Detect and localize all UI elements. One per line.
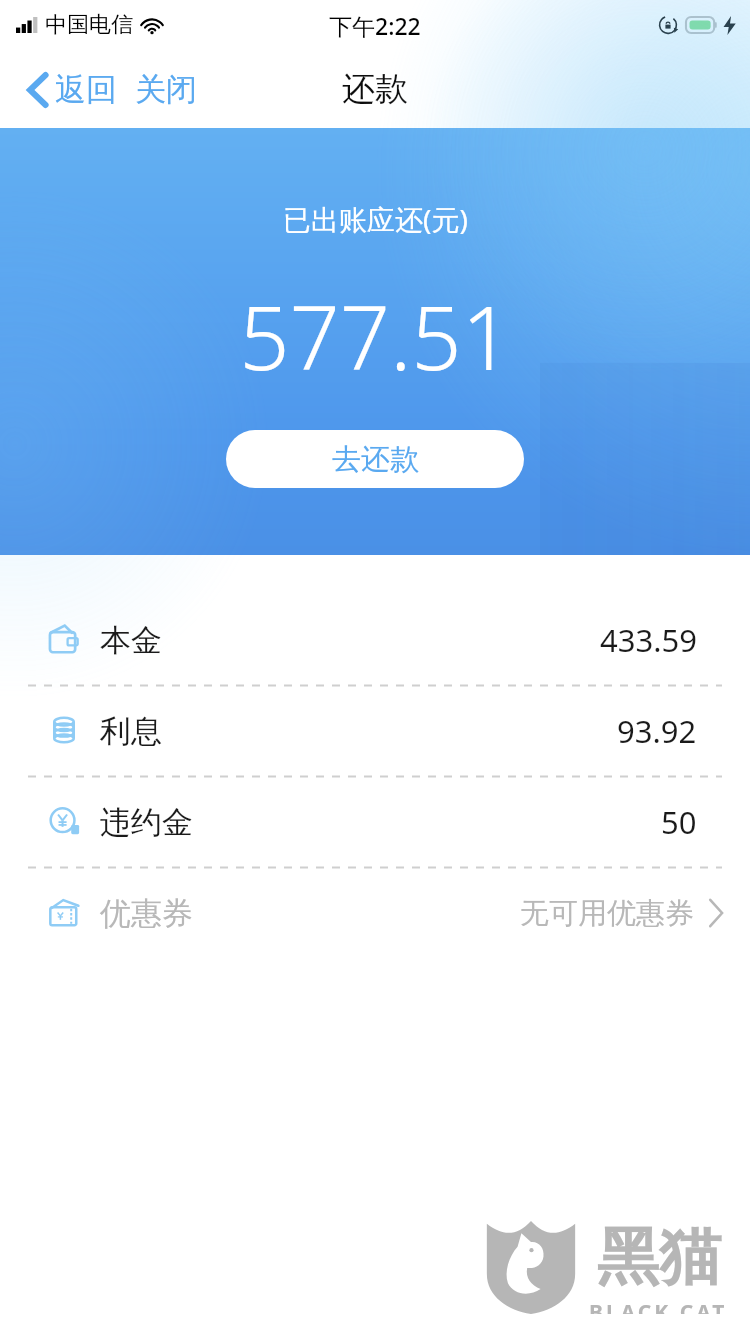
staticText: 433.59 bbox=[600, 619, 697, 661]
staticText: 50 bbox=[661, 801, 697, 843]
staticText: 无可用优惠券 bbox=[520, 895, 694, 932]
button[interactable]: 去还款 bbox=[226, 430, 524, 488]
staticText: 下午2:22 bbox=[329, 10, 421, 41]
staticText: 577.51 bbox=[239, 276, 512, 396]
button[interactable]: 关闭 bbox=[129, 64, 203, 115]
staticText: BLACK CAT bbox=[589, 1298, 728, 1314]
staticText: 本金 bbox=[100, 621, 162, 660]
staticText: 返回 bbox=[55, 70, 117, 109]
staticText: 优惠券 bbox=[100, 894, 193, 933]
staticText: 去还款 bbox=[332, 441, 419, 478]
staticText: 93.92 bbox=[617, 710, 697, 752]
button[interactable]: 返回 bbox=[22, 64, 123, 115]
staticText: 利息 bbox=[100, 712, 162, 751]
staticText: 已出账应还(元) bbox=[283, 200, 468, 238]
button[interactable]: 利息 bbox=[0, 686, 750, 776]
staticText: 还款 bbox=[342, 68, 408, 110]
staticText: 关闭 bbox=[135, 70, 197, 109]
staticText: 黑猫 bbox=[597, 1218, 721, 1296]
staticText: 中国电信 bbox=[45, 11, 133, 39]
button[interactable]: 违约金 bbox=[0, 777, 750, 867]
staticText: 违约金 bbox=[100, 803, 193, 842]
button[interactable]: 优惠券 bbox=[0, 868, 750, 958]
button[interactable]: 本金 bbox=[0, 595, 750, 685]
